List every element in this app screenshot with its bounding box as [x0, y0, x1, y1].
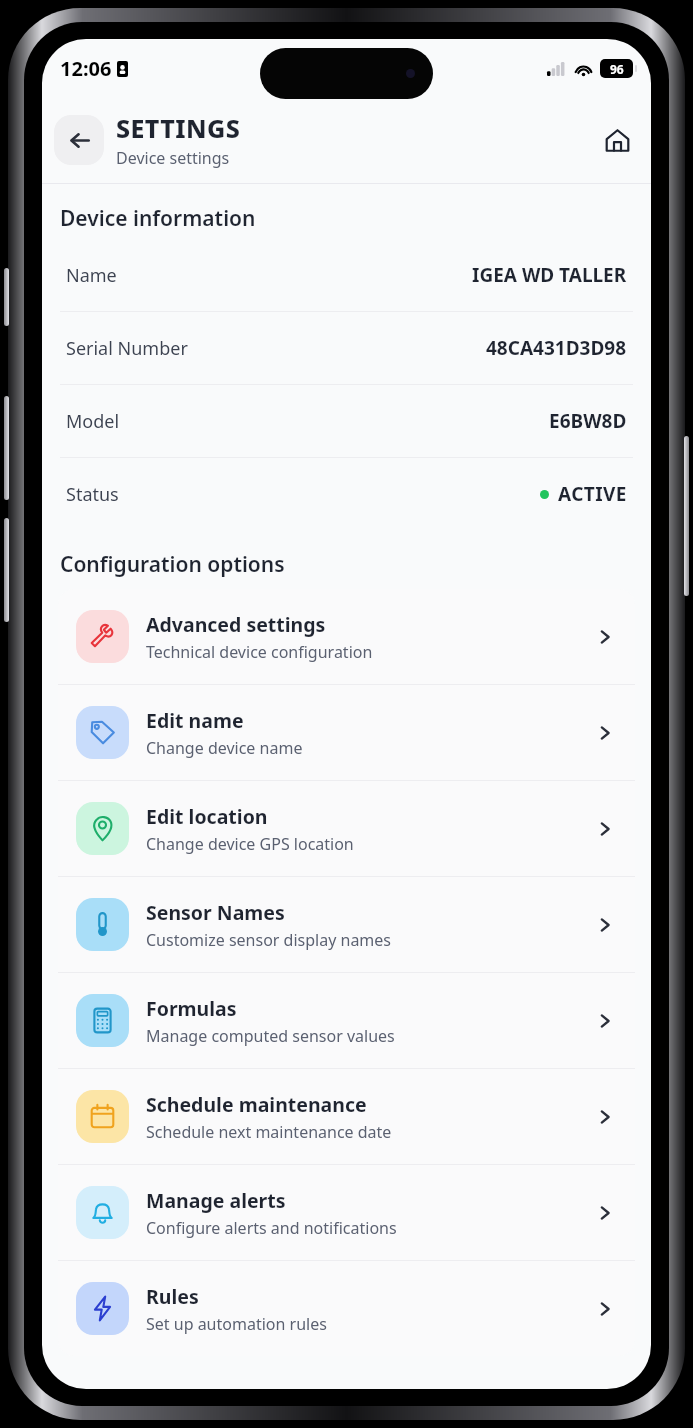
- staticText: 48CA431D3D98: [486, 335, 627, 361]
- staticText: Customize sensor display names: [146, 929, 392, 951]
- staticText: Status: [66, 482, 119, 507]
- staticText: Device information: [60, 204, 256, 233]
- staticText: Formulas: [146, 995, 237, 1022]
- staticText: ACTIVE: [558, 481, 627, 507]
- staticText: Sensor Names: [146, 899, 285, 926]
- staticText: E6BW8D: [549, 408, 627, 434]
- button[interactable]: Advanced settings: [58, 589, 635, 684]
- staticText: Manage alerts: [146, 1187, 286, 1214]
- staticText: Set up automation rules: [146, 1313, 327, 1335]
- staticText: SETTINGS: [116, 111, 241, 145]
- button[interactable]: Formulas: [58, 973, 635, 1068]
- staticText: Schedule maintenance: [146, 1091, 367, 1118]
- button[interactable]: Rules: [58, 1261, 635, 1356]
- staticText: Configure alerts and notifications: [146, 1217, 397, 1239]
- button[interactable]: Schedule maintenance: [58, 1069, 635, 1164]
- staticText: Edit name: [146, 707, 244, 734]
- staticText: Name: [66, 263, 117, 288]
- staticText: Schedule next maintenance date: [146, 1121, 392, 1143]
- button[interactable]: Sensor Names: [58, 877, 635, 972]
- staticText: Manage computed sensor values: [146, 1025, 395, 1047]
- button[interactable]: Edit name: [58, 685, 635, 780]
- button[interactable]: Home: [595, 118, 639, 162]
- staticText: Change device name: [146, 737, 303, 759]
- staticText: Model: [66, 409, 120, 434]
- button[interactable]: Edit location: [58, 781, 635, 876]
- staticText: Edit location: [146, 803, 268, 830]
- staticText: Advanced settings: [146, 611, 326, 638]
- staticText: Rules: [146, 1283, 199, 1310]
- staticText: Configuration options: [60, 550, 285, 579]
- staticText: Technical device configuration: [146, 641, 373, 663]
- staticText: Device settings: [116, 147, 230, 169]
- staticText: 96: [610, 61, 624, 77]
- button[interactable]: Manage alerts: [58, 1165, 635, 1260]
- button[interactable]: Back: [54, 115, 104, 165]
- staticText: IGEA WD TALLER: [472, 262, 627, 288]
- staticText: Serial Number: [66, 336, 188, 361]
- staticText: 12:06: [60, 55, 112, 82]
- staticText: Change device GPS location: [146, 833, 354, 855]
